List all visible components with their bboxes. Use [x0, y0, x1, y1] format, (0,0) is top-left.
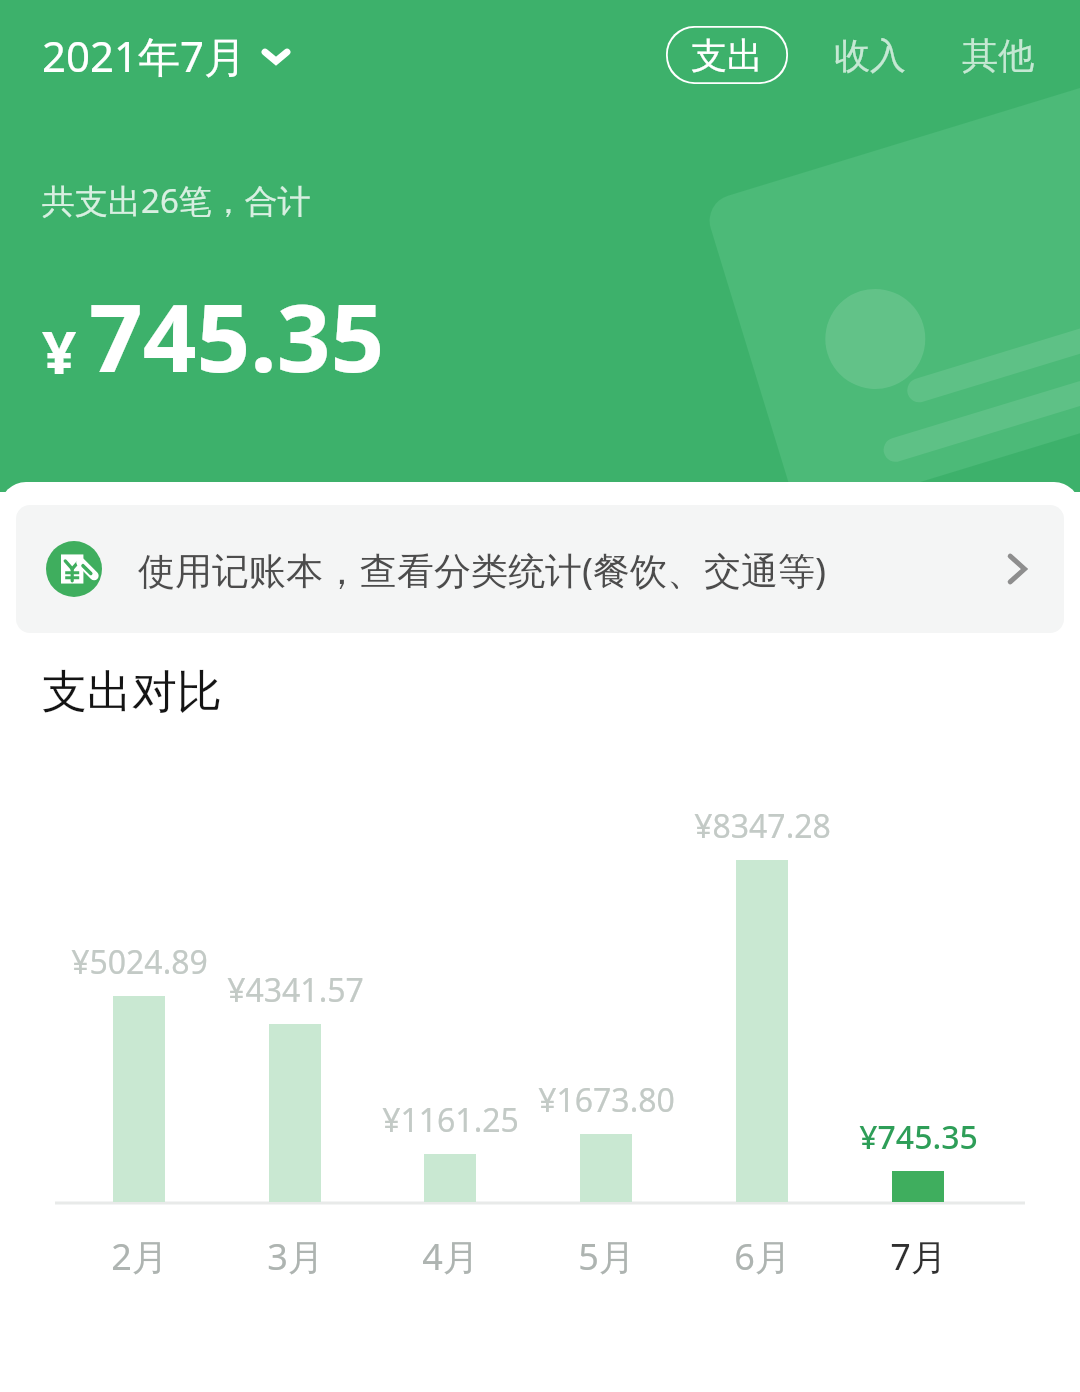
button[interactable]: 收入	[830, 25, 910, 86]
staticText: 2月	[111, 1232, 168, 1281]
staticText: 4月	[422, 1232, 479, 1281]
staticText: ¥745.35	[859, 1115, 978, 1159]
staticText: 3月	[267, 1232, 324, 1281]
staticText: 共支出26笔，合计	[42, 178, 311, 223]
staticText: ¥4341.57	[227, 968, 364, 1012]
staticText: 支出	[691, 33, 763, 78]
button[interactable]: 其他	[958, 25, 1038, 86]
button[interactable]: 2021年7月	[42, 27, 289, 84]
staticText: ¥5024.89	[71, 940, 208, 984]
button[interactable]: 支出	[666, 26, 788, 84]
staticText: 7月	[890, 1232, 947, 1281]
staticText: ¥1673.80	[538, 1078, 675, 1122]
staticText: 5月	[578, 1232, 635, 1281]
staticText: ¥	[42, 310, 77, 392]
other: 记账本	[46, 541, 102, 597]
staticText: 收入	[834, 33, 906, 78]
staticText: ¥8347.28	[694, 804, 831, 848]
staticText: 其他	[962, 33, 1034, 78]
staticText: 使用记账本，查看分类统计(餐饮、交通等)	[138, 544, 827, 595]
staticText: 745.35	[89, 272, 385, 400]
staticText: ¥1161.25	[382, 1098, 519, 1142]
button[interactable]: 记账本	[16, 505, 1064, 633]
staticText: 支出对比	[42, 664, 222, 721]
staticText: 6月	[734, 1232, 791, 1281]
staticText: 2021年7月	[42, 27, 247, 84]
